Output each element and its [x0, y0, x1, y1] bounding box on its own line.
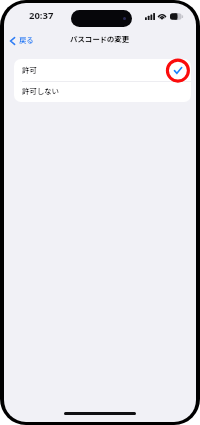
staticText: 許可しない — [22, 85, 59, 96]
staticText: パスコードの変更 — [70, 33, 130, 44]
staticText: 戻る — [19, 35, 34, 46]
button[interactable]: 許可 — [14, 59, 191, 81]
button[interactable]: 許可しない — [14, 82, 191, 102]
staticText: 許可 — [22, 64, 37, 75]
staticText: 20:37 — [29, 9, 54, 22]
button[interactable]: 戻る — [6, 32, 38, 49]
